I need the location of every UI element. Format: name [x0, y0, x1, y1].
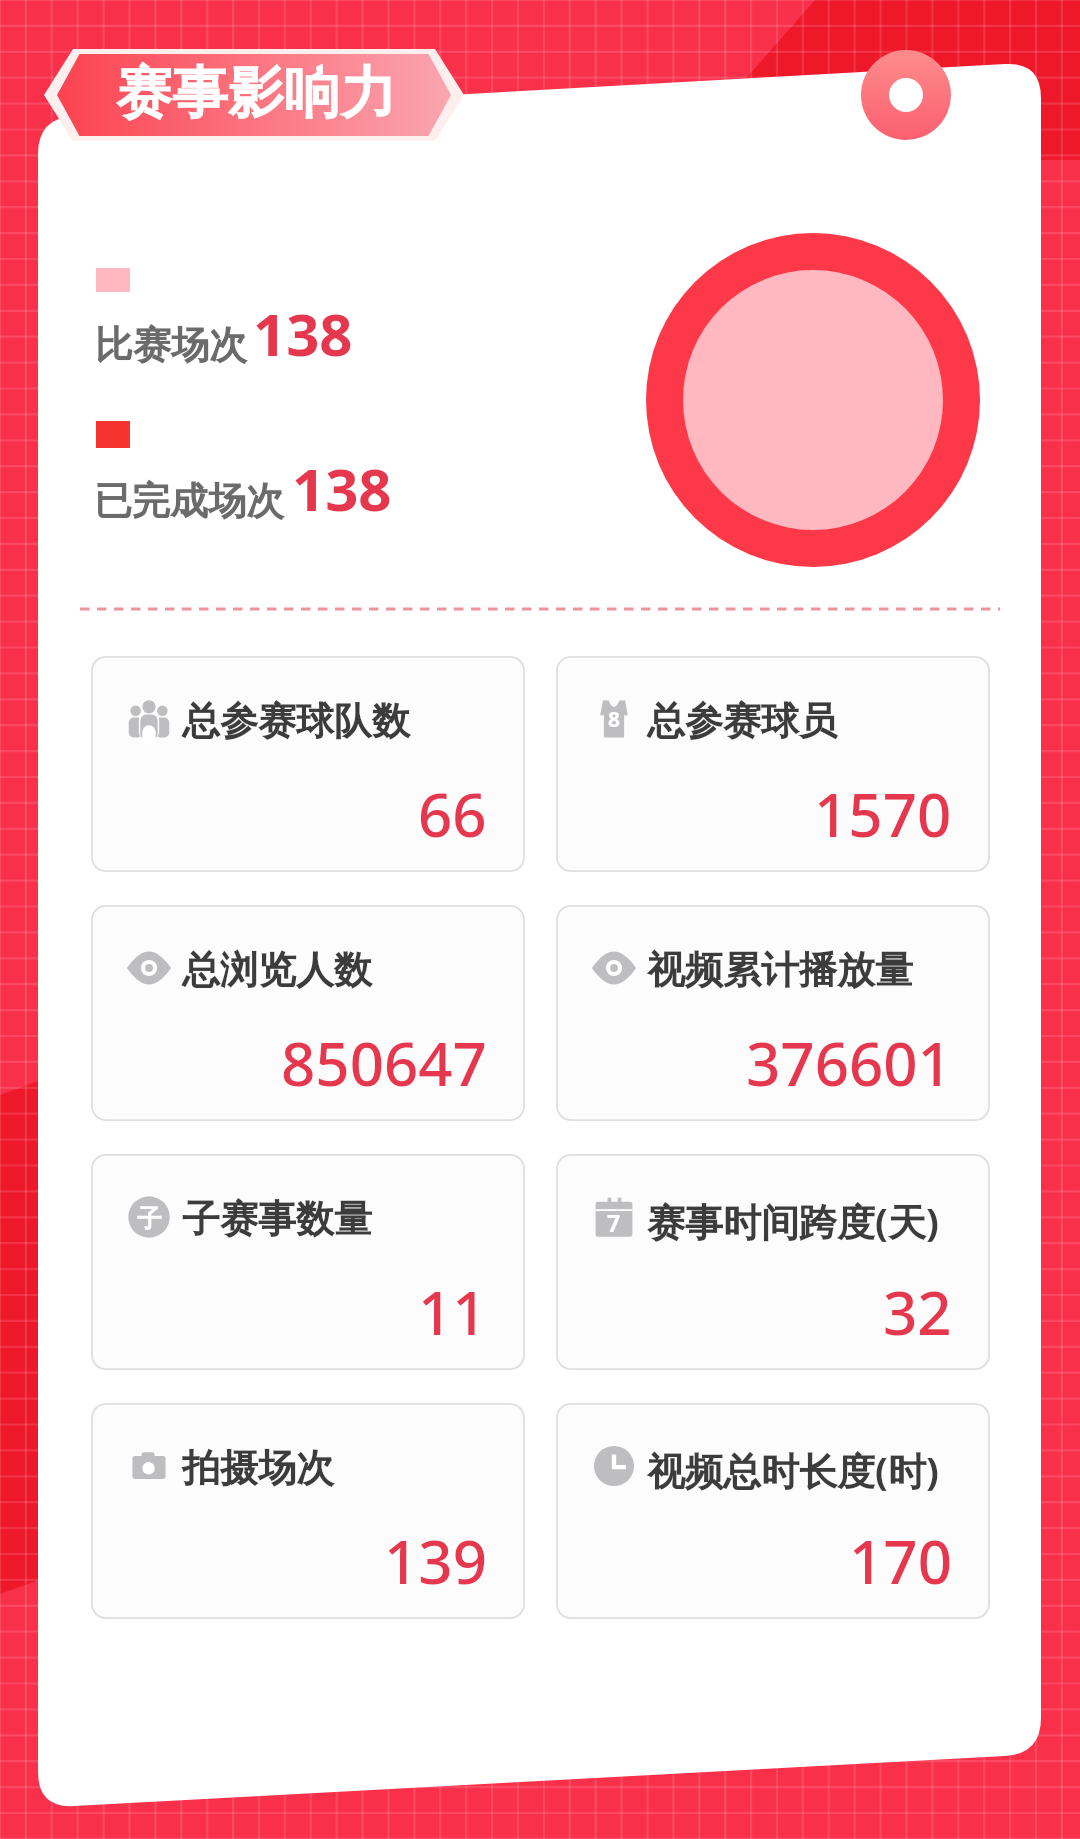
staticText: 850647 — [281, 1022, 487, 1104]
staticText: 总参赛球队数 — [182, 697, 410, 745]
staticText: 总浏览人数 — [182, 946, 372, 994]
staticText: 拍摄场次 — [182, 1444, 334, 1492]
button[interactable]: Camera — [91, 1403, 525, 1619]
button[interactable]: Calendar — [556, 1154, 990, 1370]
staticText: 138 — [253, 294, 353, 373]
staticText: 66 — [418, 773, 487, 855]
staticText: 视频累计播放量 — [647, 946, 913, 994]
other: Camera — [126, 1443, 172, 1489]
staticText: 139 — [384, 1520, 487, 1602]
button[interactable]: Teams — [91, 656, 525, 872]
staticText: 8 — [608, 705, 621, 734]
other: Sub events — [126, 1194, 172, 1240]
staticText: 1570 — [814, 773, 952, 855]
staticText: 子 — [137, 1203, 162, 1234]
button[interactable]: Views — [556, 905, 990, 1121]
staticText: 138 — [292, 449, 392, 528]
staticText: 32 — [883, 1271, 952, 1353]
staticText: 总参赛球员 — [647, 697, 837, 745]
other: Calendar — [591, 1194, 637, 1240]
staticText: 赛事影响力 — [116, 58, 396, 129]
staticText: 已完成场次 — [94, 477, 284, 525]
button[interactable]: Views — [91, 905, 525, 1121]
other: Teams — [126, 696, 172, 742]
other: Players — [591, 696, 637, 742]
button[interactable]: Sub events — [91, 1154, 525, 1370]
staticText: 11 — [418, 1271, 487, 1353]
staticText: 比赛场次 — [95, 321, 247, 369]
button[interactable]: Players — [556, 656, 990, 872]
button[interactable]: Duration — [556, 1403, 990, 1619]
staticText: 7 — [607, 1207, 621, 1238]
other: Duration — [591, 1443, 637, 1489]
other: Views — [126, 945, 172, 991]
staticText: 赛事时间跨度(天) — [647, 1195, 939, 1247]
staticText: 170 — [849, 1520, 952, 1602]
staticText: 376601 — [746, 1022, 952, 1104]
staticText: 视频总时长度(时) — [647, 1444, 939, 1496]
other: Views — [591, 945, 637, 991]
staticText: 子赛事数量 — [182, 1195, 372, 1243]
